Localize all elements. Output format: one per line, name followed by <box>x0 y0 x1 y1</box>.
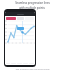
staticText: with multiple points <box>19 6 45 10</box>
button[interactable]: Progression line chart <box>5 21 35 43</box>
button[interactable]: App bar <box>5 12 35 16</box>
button[interactable]: Selected filter <box>6 17 16 20</box>
button[interactable]: Value tooltip <box>17 27 24 30</box>
staticText: Tap a point to see the exact value <box>15 68 50 71</box>
staticText: Seamless progression lines <box>15 1 50 5</box>
